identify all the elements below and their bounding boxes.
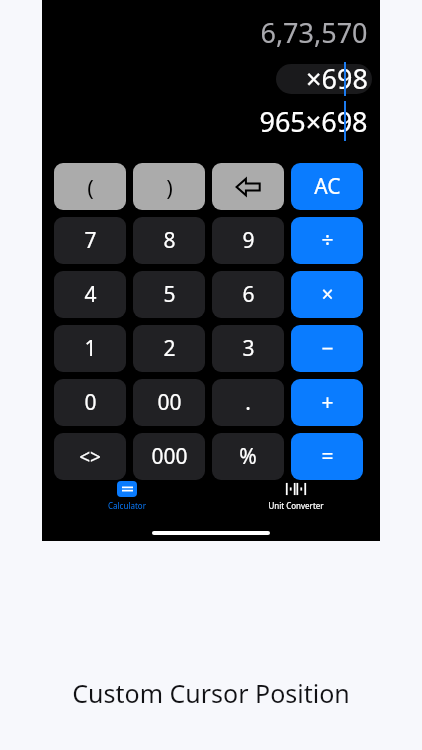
staticText: 0 (84, 388, 97, 417)
button[interactable]: Calculator (42, 477, 211, 541)
button[interactable]: × (291, 271, 363, 318)
button[interactable]: ÷ (291, 217, 363, 264)
staticText: ×698 (306, 60, 368, 97)
button[interactable]: 1 (54, 325, 126, 372)
staticText: 4 (84, 280, 97, 309)
button[interactable]: % (212, 433, 284, 480)
button[interactable]: = (291, 433, 363, 480)
button[interactable]: Backspace (212, 163, 284, 210)
button[interactable]: − (291, 325, 363, 372)
button[interactable]: 2 (133, 325, 205, 372)
button[interactable]: 6 (212, 271, 284, 318)
staticText: 2 (163, 334, 176, 363)
staticText: 965×698 (259, 103, 368, 140)
staticText: 9 (242, 226, 255, 255)
staticText: ÷ (321, 226, 334, 255)
staticText: . (245, 388, 251, 417)
staticText: 3 (242, 334, 255, 363)
button[interactable]: 4 (54, 271, 126, 318)
staticText: ) (166, 172, 173, 202)
button[interactable]: <> (54, 433, 126, 480)
staticText: × (321, 280, 334, 309)
staticText: + (321, 388, 334, 417)
staticText: 5 (163, 280, 176, 309)
staticText: 000 (151, 442, 188, 471)
button[interactable]: ( (54, 163, 126, 210)
staticText: <> (79, 444, 101, 470)
staticText: = (321, 442, 334, 471)
button[interactable]: 0 (54, 379, 126, 426)
staticText: 1 (84, 334, 97, 363)
button[interactable]: . (212, 379, 284, 426)
staticText: 7 (84, 226, 97, 255)
button[interactable]: 000 (133, 433, 205, 480)
staticText: − (321, 334, 334, 363)
staticText: 8 (163, 226, 176, 255)
staticText: 6 (242, 280, 255, 309)
staticText: 00 (157, 388, 182, 417)
button[interactable]: + (291, 379, 363, 426)
staticText: ( (87, 172, 94, 202)
button[interactable]: 00 (133, 379, 205, 426)
button[interactable]: 5 (133, 271, 205, 318)
button[interactable]: Unit Converter (211, 477, 380, 541)
staticText: AC (314, 172, 341, 201)
staticText: 6,73,570 (260, 14, 368, 51)
staticText: Calculator (108, 500, 146, 511)
button[interactable]: 3 (212, 325, 284, 372)
staticText: % (239, 442, 257, 471)
staticText: Unit Converter (268, 500, 324, 511)
button[interactable]: AC (291, 163, 363, 210)
button[interactable]: 7 (54, 217, 126, 264)
button[interactable]: ) (133, 163, 205, 210)
button[interactable]: 9 (212, 217, 284, 264)
staticText: Custom Cursor Position (72, 676, 350, 710)
button[interactable]: 8 (133, 217, 205, 264)
